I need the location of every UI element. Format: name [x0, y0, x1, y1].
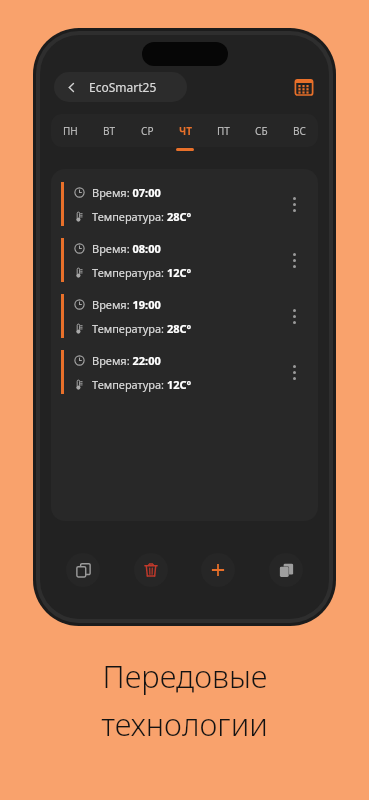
staticText: Время: 19:00 — [92, 297, 161, 312]
button[interactable]: Paste — [269, 553, 303, 587]
staticText: EcoSmart25 — [89, 79, 157, 95]
staticText: Время: 22:00 — [92, 353, 161, 368]
button[interactable]: More options — [282, 360, 306, 384]
button[interactable]: Время: 19:00 — [51, 288, 318, 344]
button[interactable]: More options — [282, 304, 306, 328]
staticText: Температура: 28C° — [92, 209, 192, 224]
staticText: Температура: 12C° — [92, 377, 192, 392]
staticText: Время: 08:00 — [92, 241, 161, 256]
staticText: Время: 07:00 — [92, 185, 161, 200]
button[interactable]: More options — [282, 248, 306, 272]
button[interactable]: Calendar — [293, 76, 315, 98]
button[interactable]: ЧТ — [166, 114, 204, 147]
button[interactable]: ВТ — [90, 114, 128, 147]
staticText: СБ — [255, 124, 268, 138]
staticText: технологии — [101, 703, 268, 745]
staticText: ВС — [293, 124, 306, 138]
staticText: Температура: 12C° — [92, 265, 192, 280]
button[interactable]: ПН — [51, 114, 90, 147]
button[interactable]: EcoSmart25 — [54, 72, 187, 102]
button[interactable]: Время: 08:00 — [51, 232, 318, 288]
button[interactable]: СР — [128, 114, 166, 147]
button[interactable]: Add — [201, 553, 235, 587]
button[interactable]: ВС — [280, 114, 318, 147]
button[interactable]: Delete — [134, 553, 168, 587]
button[interactable]: Copy — [66, 553, 100, 587]
staticText: ПТ — [217, 124, 230, 138]
staticText: ВТ — [103, 124, 116, 138]
button[interactable]: Время: 07:00 — [51, 176, 318, 232]
staticText: Температура: 28C° — [92, 321, 192, 336]
staticText: ПН — [63, 124, 78, 138]
staticText: ЧТ — [179, 124, 192, 138]
button[interactable]: СБ — [242, 114, 280, 147]
staticText: Передовые — [102, 655, 268, 697]
button[interactable]: ПТ — [204, 114, 242, 147]
staticText: СР — [141, 124, 154, 138]
button[interactable]: Время: 22:00 — [51, 344, 318, 400]
button[interactable]: More options — [282, 192, 306, 216]
